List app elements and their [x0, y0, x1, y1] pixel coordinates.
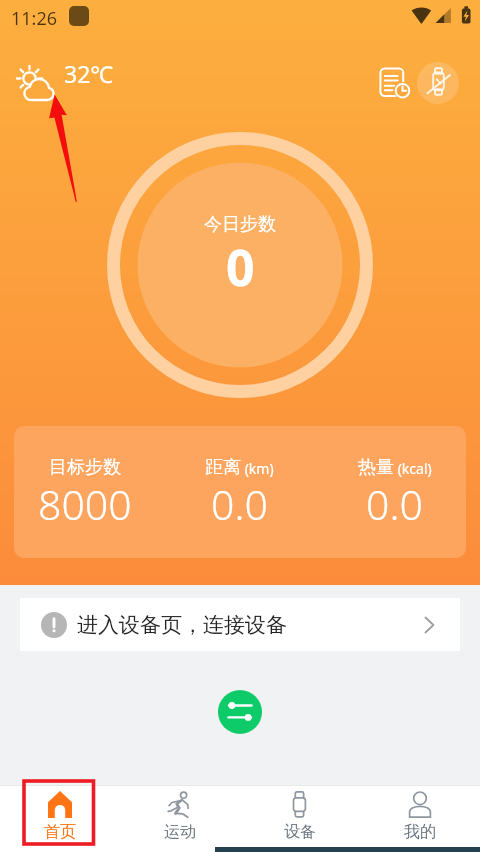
button[interactable]: 首页 — [0, 786, 120, 847]
staticText: 0.0 — [211, 476, 268, 532]
button[interactable]: 运动 — [120, 786, 240, 847]
staticText: 0 — [226, 233, 255, 301]
button[interactable]: 我的 — [360, 786, 480, 847]
button[interactable]: Settings — [218, 690, 262, 734]
staticText: 32℃ — [64, 58, 114, 89]
button[interactable]: 进入设备页，连接设备 — [20, 598, 460, 651]
staticText: 8000 — [38, 476, 132, 532]
button[interactable]: 32℃ — [13, 47, 114, 97]
staticText: 设备 — [284, 822, 316, 842]
staticText: 0.0 — [366, 476, 423, 532]
staticText: 首页 — [44, 822, 76, 842]
button[interactable]: 设备 — [240, 786, 360, 847]
button[interactable]: Device disconnected — [417, 62, 459, 104]
staticText: 热量 — [358, 456, 394, 479]
staticText: (km) — [241, 459, 274, 478]
staticText: 进入设备页，连接设备 — [77, 612, 287, 638]
staticText: (kcal) — [394, 459, 432, 478]
staticText: 距离 — [205, 456, 241, 479]
staticText: 今日步数 — [204, 213, 276, 236]
staticText: 11:26 — [11, 6, 58, 31]
staticText: 运动 — [164, 822, 196, 842]
staticText: 我的 — [404, 822, 436, 842]
staticText: 目标步数 — [49, 456, 121, 479]
button[interactable]: History — [374, 62, 416, 104]
